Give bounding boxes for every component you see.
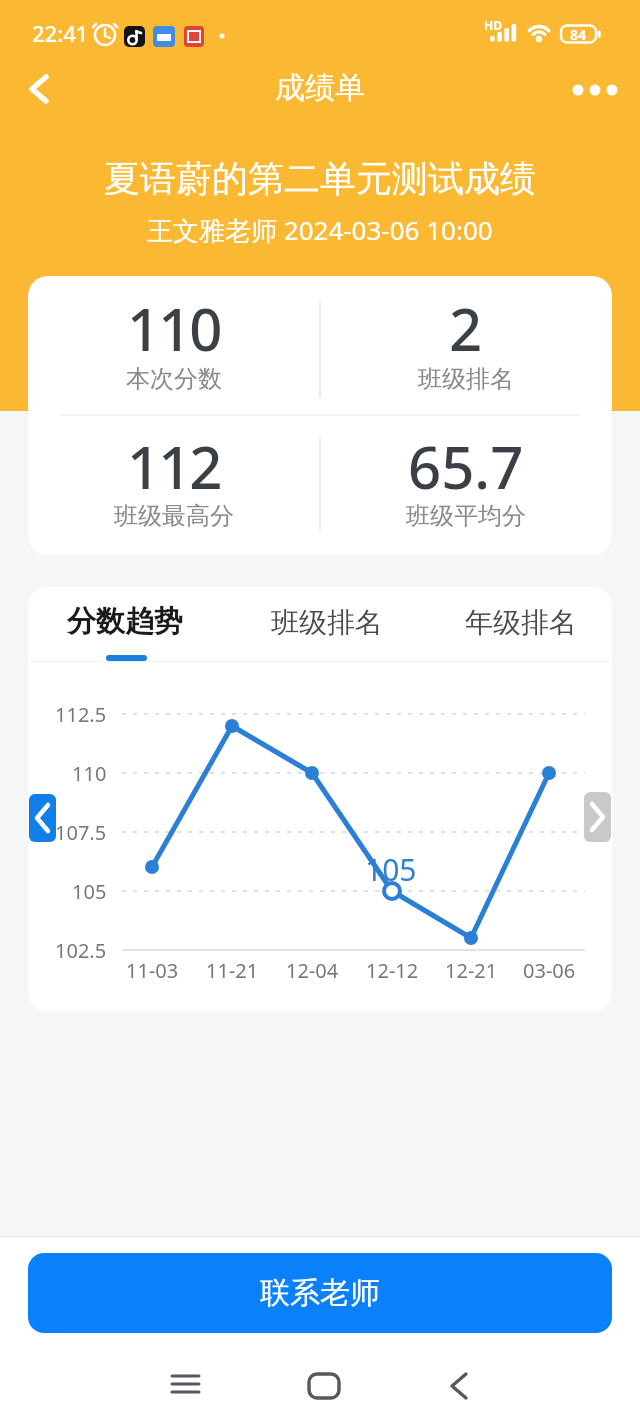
staticText: 班级最高分 [114, 501, 234, 531]
staticText: 102.5 [55, 937, 107, 964]
button[interactable]: 年级排名 [456, 603, 586, 641]
staticText: HD [484, 17, 502, 31]
staticText: 班级排名 [418, 364, 514, 394]
button[interactable]: 分数趋势 [60, 602, 190, 640]
staticText: 22:41 [32, 18, 89, 48]
staticText: 夏语蔚的第二单元测试成绩 [104, 156, 536, 200]
staticText: 12-21 [445, 957, 498, 984]
button[interactable]: 班级排名 [262, 603, 392, 641]
button[interactable] [564, 68, 624, 112]
button[interactable]: 成绩单 [220, 68, 420, 108]
staticText: 105 [72, 878, 107, 905]
staticText: 2 [449, 289, 483, 368]
staticText: 11-03 [126, 957, 179, 984]
staticText: 105 [365, 849, 417, 881]
staticText: 112.5 [55, 701, 107, 728]
staticText: 112 [127, 427, 221, 506]
staticText: 107.5 [55, 819, 107, 846]
button[interactable] [428, 1354, 492, 1414]
staticText: 110 [127, 289, 221, 368]
staticText: 班级排名 [271, 605, 383, 640]
staticText: 本次分数 [126, 364, 222, 394]
button[interactable] [18, 68, 62, 112]
staticText: 分数趋势 [67, 603, 183, 640]
staticText: 110 [72, 760, 107, 787]
button[interactable]: 联系老师 [28, 1253, 612, 1333]
button[interactable] [146, 1354, 218, 1414]
staticText: 12-04 [286, 957, 339, 984]
staticText: 年级排名 [465, 605, 577, 640]
button[interactable] [584, 792, 611, 842]
staticText: 班级平均分 [406, 501, 526, 531]
staticText: 联系老师 [260, 1274, 380, 1312]
button[interactable] [288, 1354, 352, 1414]
staticText: 65.7 [408, 427, 524, 506]
staticText: 84 [570, 25, 587, 43]
button[interactable] [29, 794, 56, 842]
staticText: 03-06 [523, 957, 576, 984]
staticText: 成绩单 [275, 69, 365, 107]
staticText: 11-21 [206, 957, 259, 984]
staticText: 王文雅老师 2024-03-06 10:00 [147, 212, 493, 248]
staticText: 12-12 [366, 957, 419, 984]
